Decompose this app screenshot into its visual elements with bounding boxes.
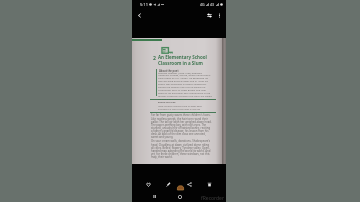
button[interactable]: More options <box>214 10 224 20</box>
button[interactable]: Back <box>134 10 144 20</box>
staticText: 43 <box>210 2 215 7</box>
button[interactable]: Recents <box>149 191 160 202</box>
staticText: Far far from gusty waves these children'… <box>151 113 212 139</box>
button[interactable]: Delete <box>203 178 216 191</box>
staticText: fRecorder <box>201 195 225 202</box>
button[interactable]: Back <box>198 191 209 202</box>
staticText: Stephen Spender (1909-1995) attended Uni… <box>158 71 213 101</box>
button[interactable]: Edit <box>162 178 175 191</box>
staticText: About the poet <box>159 69 179 73</box>
button[interactable]: View settings <box>204 10 214 20</box>
button[interactable]: Home <box>174 191 185 202</box>
button[interactable]: Share <box>183 178 196 191</box>
staticText: 4G <box>200 2 205 7</box>
staticText: Before you read <box>158 101 176 104</box>
staticText: 5:11 <box>140 2 148 7</box>
staticText: An Elementary School Classroom in a Slum <box>158 54 207 66</box>
staticText: Have you ever noticed if and on what bas… <box>158 105 210 111</box>
button[interactable]: Favourite <box>142 178 155 191</box>
staticText: 2 <box>153 54 156 61</box>
staticText: On sour cream walls, donations. Shakespe… <box>151 139 212 159</box>
